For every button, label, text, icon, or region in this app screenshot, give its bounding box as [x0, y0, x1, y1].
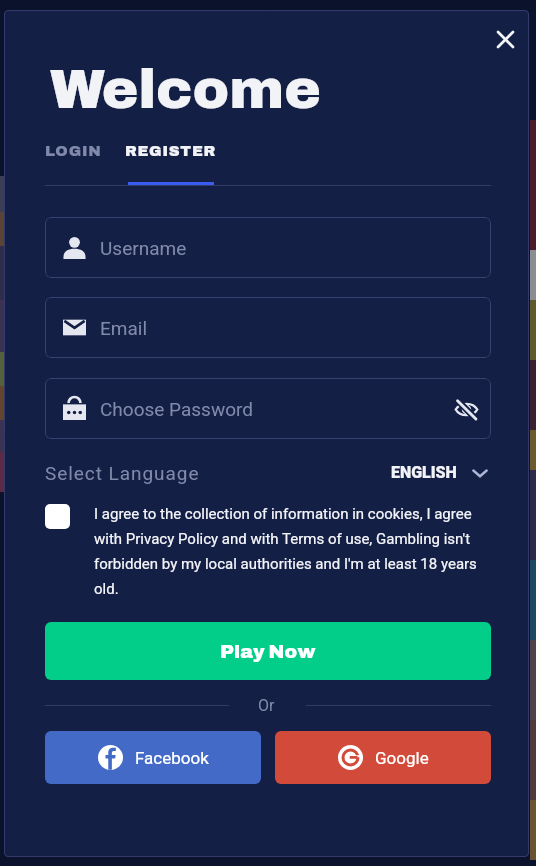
staticText: Select Language — [45, 462, 200, 484]
staticText: REGISTER — [125, 143, 217, 159]
staticText: Welcome — [50, 60, 321, 120]
button[interactable]: I agree to the terms — [45, 504, 70, 529]
button[interactable]: ENGLISH — [391, 463, 489, 482]
button[interactable]: Facebook — [45, 731, 261, 784]
button[interactable]: Email — [45, 297, 491, 358]
staticText: Choose Password — [100, 398, 254, 420]
staticText: I agree to the collection of information… — [94, 505, 484, 597]
staticText: Play Now — [220, 641, 316, 662]
staticText: ENGLISH — [391, 463, 457, 482]
button[interactable]: Close — [487, 21, 523, 57]
button[interactable]: REGISTER — [128, 131, 214, 185]
staticText: Or — [258, 696, 275, 715]
staticText: Facebook — [135, 748, 209, 768]
staticText: Username — [100, 237, 187, 259]
button[interactable]: Show password — [445, 388, 487, 430]
button[interactable]: LOGIN — [45, 135, 102, 167]
button[interactable]: Play Now — [45, 622, 491, 680]
staticText: LOGIN — [45, 143, 102, 159]
button[interactable]: Google — [275, 731, 491, 784]
button[interactable]: Choose Password — [45, 378, 491, 439]
staticText: Email — [100, 317, 148, 339]
button[interactable]: Username — [45, 217, 491, 278]
staticText: Google — [375, 748, 429, 768]
